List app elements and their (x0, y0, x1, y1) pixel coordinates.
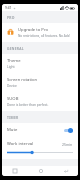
staticText: Light (7, 65, 15, 69)
other: Work interval slider (7, 150, 73, 155)
staticText: SUOB (7, 96, 19, 102)
button[interactable]: Home (28, 166, 53, 176)
staticText: PRO (7, 15, 15, 20)
button[interactable]: SUOB (2, 92, 78, 111)
staticText: Upgrade to Pro (18, 27, 49, 33)
staticText: Device (7, 84, 17, 88)
staticText: TIMER (7, 115, 19, 120)
staticText: 25min (62, 142, 73, 147)
staticText: GENERAL (7, 46, 24, 51)
button[interactable]: Screen rotation (2, 73, 78, 92)
staticText: Done is better than perfect. (7, 103, 49, 107)
staticText: 9:41 (5, 6, 12, 10)
button[interactable]: Work interval (2, 137, 78, 159)
staticText: Screen rotation (7, 77, 38, 83)
button[interactable]: Back (53, 166, 78, 176)
staticText: Theme (7, 58, 21, 64)
button[interactable]: Recents (2, 166, 28, 176)
staticText: No restrictions, all features. No Ads! (18, 34, 70, 38)
button[interactable]: Upgrade to Pro (2, 23, 78, 42)
staticText: Mute (7, 127, 18, 133)
button[interactable]: Theme (2, 54, 78, 73)
staticText: Work interval (7, 141, 34, 147)
button[interactable]: Mute (2, 123, 78, 137)
